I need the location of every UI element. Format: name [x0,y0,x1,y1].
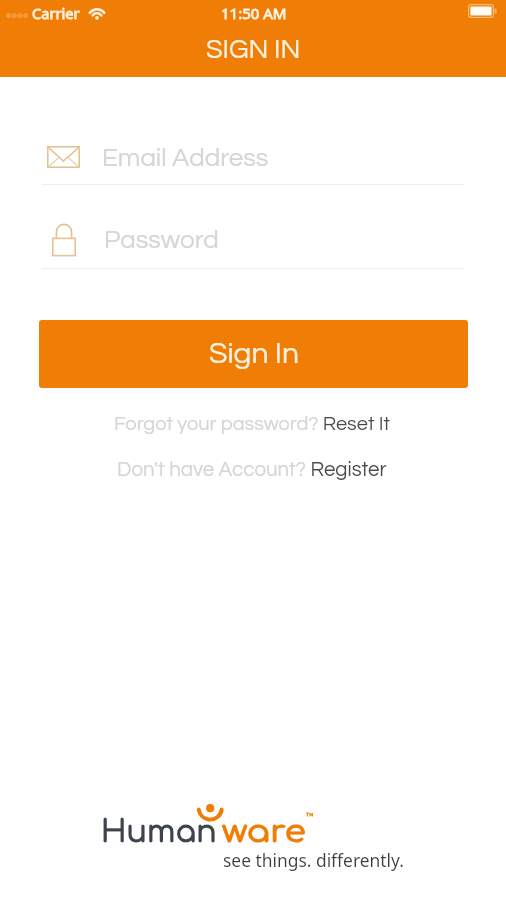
staticText: Human [101,816,217,849]
staticText: SIGN IN [206,36,301,64]
staticText: ware [222,816,306,849]
staticText: 11:50 AM [221,3,287,23]
button[interactable]: Forgot your password? Reset It [108,410,396,438]
button[interactable]: Don't have Account? Register [108,455,396,483]
button[interactable]: Sign In [39,320,468,388]
staticText: Don't have Account? Register [117,459,387,480]
staticText: Sign In [209,338,299,369]
other: Email address [47,146,80,168]
staticText: Email Address [102,145,269,172]
other: Password [52,224,76,257]
staticText: Carrier [32,3,80,23]
staticText: Password [104,227,219,254]
staticText: Forgot your password? Reset It [114,414,390,435]
staticText: see things. differently. [223,848,404,872]
